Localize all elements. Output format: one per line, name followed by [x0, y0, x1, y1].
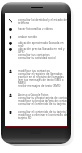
button[interactable]: grabar sonido: [9, 35, 67, 38]
staticText: recibir mensajes de texto (SMS): [18, 84, 61, 88]
staticText: modificar o eliminar el contenido de tu: [18, 113, 71, 117]
button[interactable]: ubicación aproximada (basada en: [9, 41, 67, 47]
button[interactable]: ubicación precisa (basada en red y: [9, 47, 67, 59]
staticText: ubicación aproximada (basada en: [18, 41, 64, 45]
staticText: grabar sonido: [18, 35, 38, 38]
staticText: consultar la identidad y el estado del: [18, 18, 68, 22]
staticText: escribir en el registro de llamadas: [18, 75, 64, 79]
button[interactable]: consultar el contenido de tu tarjeta SD: [9, 110, 67, 119]
staticText: consultar tu actividad social: [18, 56, 56, 60]
staticText: Acceso a Google Fotos: [18, 93, 49, 97]
staticText: red): [18, 44, 24, 48]
button[interactable]: consultar la identidad y el estado del: [9, 18, 67, 24]
staticText: hacer fotografías y vídeos: [18, 27, 53, 30]
staticText: MMS): [18, 81, 26, 85]
staticText: leer tus mensajes de texto (SMS o: [18, 78, 64, 82]
staticText: consultar tu propia tarjeta de contacto: [18, 96, 71, 100]
staticText: tarjeta SD: [18, 116, 32, 120]
staticText: consultar tus contactos: [18, 53, 50, 57]
staticText: teléfono: [18, 21, 30, 25]
button[interactable]: hacer fotografías y vídeos: [9, 27, 67, 30]
staticText: consultar el contenido de tu tarjeta SD: [18, 110, 71, 114]
button[interactable]: Acceso a Google Fotos: [9, 93, 67, 105]
staticText: modificar tu propia tarjeta de contacto: [18, 99, 71, 103]
staticText: consultar el registro de llamadas: [18, 72, 63, 76]
staticText: modificar tus contactos: [18, 69, 50, 73]
staticText: ubicación precisa (basada en red y: [18, 47, 65, 51]
button[interactable]: modificar tus contactos: [9, 69, 67, 87]
staticText: consultar el contenido de tu tarjeta: [18, 102, 66, 106]
staticText: GPS): [18, 50, 25, 54]
